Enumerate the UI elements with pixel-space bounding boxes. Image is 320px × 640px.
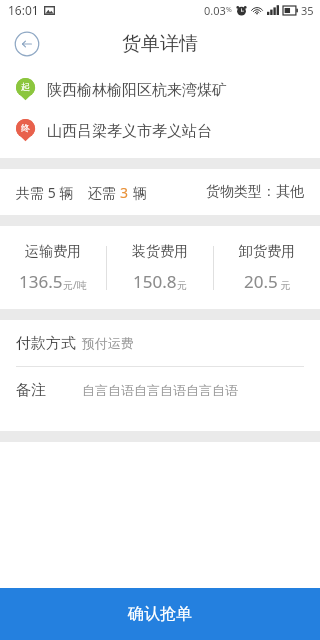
staticText: 16:01 bbox=[8, 2, 39, 18]
staticText: 136.5 bbox=[19, 270, 63, 293]
staticText: 山西吕梁孝义市孝义站台 bbox=[47, 122, 212, 141]
button[interactable]: 确认抢单 bbox=[0, 588, 320, 640]
staticText: 装货费用 bbox=[132, 243, 188, 261]
staticText: 终 bbox=[21, 122, 30, 133]
staticText: 陕西榆林榆阳区杭来湾煤矿 bbox=[47, 81, 227, 100]
button[interactable]: 付款方式 bbox=[0, 320, 320, 366]
staticText: 货物类型：其他 bbox=[206, 183, 304, 201]
button[interactable]: 备注 bbox=[0, 367, 320, 413]
button[interactable]: 卸货费用 bbox=[214, 243, 320, 293]
staticText: 备注 bbox=[16, 381, 46, 400]
staticText: 卸货费用 bbox=[239, 243, 295, 261]
staticText: 0.03 bbox=[204, 3, 226, 18]
staticText: 共需 5 辆 bbox=[16, 183, 74, 202]
staticText: 运输费用 bbox=[25, 243, 81, 261]
staticText: 20.5 bbox=[244, 270, 278, 293]
staticText: 预付运费 bbox=[82, 335, 134, 351]
button[interactable]: Back bbox=[8, 25, 46, 63]
staticText: 自言自语自言自语自言自语 bbox=[82, 382, 238, 398]
staticText: 确认抢单 bbox=[128, 604, 192, 624]
button[interactable]: 终 bbox=[0, 119, 320, 143]
staticText: 货单详情 bbox=[122, 32, 198, 56]
staticText: 还需 bbox=[88, 183, 120, 202]
staticText: 元 bbox=[177, 279, 187, 292]
staticText: % bbox=[226, 5, 232, 15]
staticText: 150.8 bbox=[133, 270, 177, 293]
button[interactable]: 起 bbox=[0, 78, 320, 102]
staticText: 付款方式 bbox=[16, 334, 76, 353]
staticText: 辆 bbox=[129, 183, 147, 202]
staticText: 3 bbox=[120, 183, 129, 202]
staticText: 元 bbox=[278, 278, 291, 292]
button[interactable]: 运输费用 bbox=[0, 243, 106, 293]
staticText: 元/吨 bbox=[63, 278, 87, 292]
button[interactable]: 装货费用 bbox=[107, 243, 213, 293]
staticText: 35 bbox=[301, 3, 314, 18]
staticText: 起 bbox=[21, 81, 30, 92]
